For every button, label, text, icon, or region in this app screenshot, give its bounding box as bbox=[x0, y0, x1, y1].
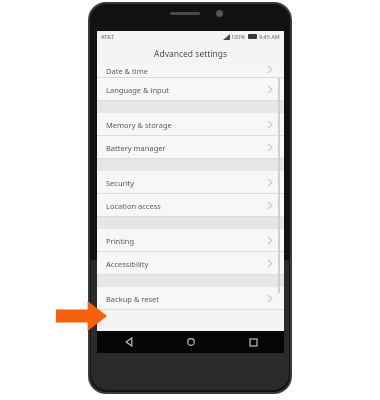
staticText: Security bbox=[106, 178, 135, 188]
button[interactable]: Language & input bbox=[97, 78, 284, 101]
staticText: Accessibility bbox=[106, 259, 149, 269]
staticText: 9:45 AM bbox=[259, 33, 280, 40]
staticText: Memory & storage bbox=[106, 120, 172, 130]
button[interactable]: Battery manager bbox=[97, 136, 284, 159]
staticText: Language & input bbox=[106, 85, 169, 95]
staticText: AT&T bbox=[101, 33, 114, 40]
button[interactable]: Date & time bbox=[97, 66, 284, 78]
staticText: 100% bbox=[231, 33, 246, 40]
button[interactable]: Home bbox=[160, 331, 222, 353]
staticText: Advanced settings bbox=[154, 48, 228, 60]
staticText: Date & time bbox=[106, 66, 148, 76]
button[interactable]: Location access bbox=[97, 194, 284, 217]
staticText: Printing bbox=[106, 236, 135, 246]
button[interactable]: Recents bbox=[222, 331, 284, 353]
button[interactable]: Accessibility bbox=[97, 252, 284, 275]
button[interactable]: Backup & reset bbox=[97, 287, 284, 310]
staticText: Battery manager bbox=[106, 143, 166, 153]
staticText: Location access bbox=[106, 201, 161, 211]
button[interactable]: Back bbox=[97, 331, 160, 353]
button[interactable]: Security bbox=[97, 171, 284, 194]
button[interactable]: Memory & storage bbox=[97, 113, 284, 136]
button[interactable]: Printing bbox=[97, 229, 284, 252]
other: Pointer arrow to Backup & reset bbox=[56, 301, 107, 331]
staticText: Backup & reset bbox=[106, 294, 160, 304]
